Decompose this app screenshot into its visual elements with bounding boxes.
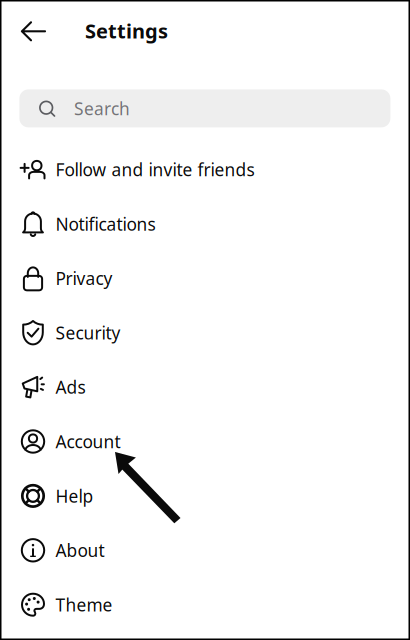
staticText: Notifications [55, 212, 155, 235]
button[interactable]: About [0, 523, 410, 577]
staticText: Help [55, 484, 93, 507]
staticText: Search [74, 97, 130, 120]
staticText: Follow and invite friends [55, 158, 254, 181]
button[interactable]: Ads [0, 360, 410, 414]
staticText: Settings [85, 17, 168, 44]
staticText: Ads [55, 376, 85, 399]
staticText: About [55, 539, 104, 562]
button[interactable]: Help [0, 469, 410, 523]
button[interactable]: Security [0, 305, 410, 360]
staticText: Privacy [55, 267, 112, 290]
button[interactable]: Follow and invite friends [0, 142, 410, 197]
button[interactable]: Privacy [0, 251, 410, 305]
button[interactable]: Theme [0, 577, 410, 632]
staticText: Theme [55, 593, 112, 616]
staticText: Security [55, 321, 120, 344]
button[interactable]: Account [0, 414, 410, 469]
button[interactable]: Search [19, 89, 390, 127]
button[interactable]: Notifications [0, 197, 410, 251]
button[interactable]: Back [11, 9, 55, 53]
staticText: Account [55, 430, 120, 453]
